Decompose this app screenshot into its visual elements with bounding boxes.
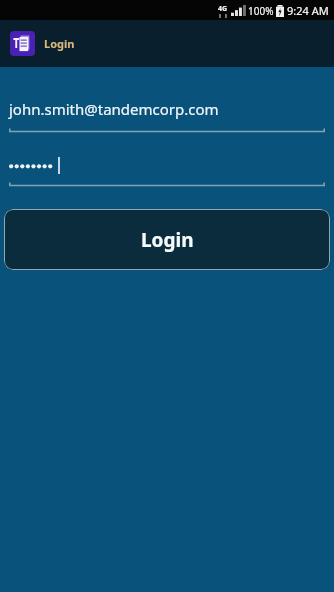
button[interactable]: john.smith@tandemcorp.com [0, 99, 334, 133]
button[interactable]: Login [0, 20, 334, 67]
staticText: 4G [218, 4, 228, 14]
staticText: 100% [248, 4, 274, 18]
button[interactable]: Login [4, 209, 330, 270]
button[interactable] [0, 157, 334, 187]
staticText: Login [141, 227, 194, 253]
staticText: john.smith@tandemcorp.com [9, 99, 219, 119]
staticText: 9:24 AM [287, 3, 329, 18]
staticText: Login [44, 36, 75, 51]
